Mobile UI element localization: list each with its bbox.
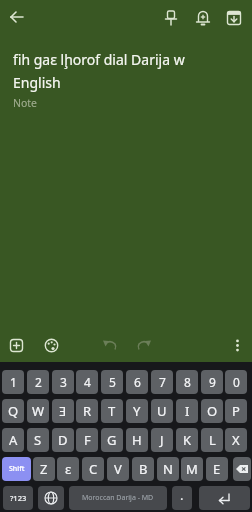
staticText: B <box>139 460 148 478</box>
staticText: I <box>185 402 190 420</box>
staticText: N <box>163 460 173 478</box>
button[interactable]: O <box>201 399 223 423</box>
button[interactable]: A <box>2 428 24 452</box>
staticText: . <box>180 486 184 504</box>
staticText: Z <box>40 460 48 478</box>
staticText: T <box>108 402 116 420</box>
button[interactable]: Moroccan Darija - MD <box>69 486 167 510</box>
button[interactable]: ɛ <box>57 457 79 481</box>
button[interactable]: R <box>76 399 98 423</box>
staticText: Shift <box>9 464 25 474</box>
staticText: F <box>84 431 91 449</box>
button[interactable]: W <box>27 399 49 423</box>
button[interactable]: B <box>132 457 154 481</box>
staticText: Ǝ <box>59 402 67 420</box>
button[interactable]: Q <box>2 399 24 423</box>
button[interactable]: N <box>157 457 179 481</box>
button[interactable]: F <box>76 428 98 452</box>
button[interactable]: 9 <box>201 370 223 394</box>
button[interactable]: Y <box>126 399 148 423</box>
staticText: 1 <box>10 374 17 390</box>
staticText: J <box>160 431 164 449</box>
button[interactable]: Z <box>33 457 55 481</box>
staticText: 0 <box>233 374 240 390</box>
staticText: 7 <box>159 374 166 390</box>
button[interactable] <box>40 334 63 357</box>
button[interactable]: D <box>52 428 74 452</box>
button[interactable]: 4 <box>76 370 98 394</box>
staticText: D <box>58 431 68 449</box>
button[interactable]: 5 <box>101 370 123 394</box>
button[interactable] <box>159 6 183 30</box>
button[interactable]: 2 <box>27 370 49 394</box>
button[interactable]: V <box>107 457 129 481</box>
button[interactable] <box>191 6 215 30</box>
staticText: C <box>89 460 98 478</box>
staticText: U <box>157 402 167 420</box>
staticText: E <box>213 460 221 478</box>
staticText: ɛ <box>65 460 72 478</box>
staticText: H <box>132 431 142 449</box>
staticText: P <box>232 402 240 420</box>
button[interactable]: X <box>225 428 247 452</box>
staticText: Q <box>8 402 19 420</box>
button[interactable]: 0 <box>225 370 247 394</box>
staticText: 6 <box>134 374 141 390</box>
button[interactable]: I <box>176 399 198 423</box>
button[interactable]: S <box>27 428 49 452</box>
staticText: 5 <box>109 374 116 390</box>
button[interactable] <box>38 486 64 510</box>
staticText: X <box>232 431 240 449</box>
button[interactable]: M <box>181 457 203 481</box>
button[interactable]: C <box>82 457 104 481</box>
button[interactable]: U <box>151 399 173 423</box>
staticText: A <box>9 431 18 449</box>
button[interactable]: G <box>101 428 123 452</box>
button[interactable]: L <box>201 428 223 452</box>
button[interactable]: T <box>101 399 123 423</box>
staticText: K <box>183 431 192 449</box>
button[interactable]: ?123 <box>3 486 33 510</box>
button[interactable]: Ǝ <box>52 399 74 423</box>
button[interactable]: . <box>172 486 192 510</box>
staticText: 8 <box>184 374 191 390</box>
button[interactable]: 8 <box>176 370 198 394</box>
staticText: O <box>207 402 218 420</box>
staticText: V <box>114 460 122 478</box>
button[interactable] <box>199 486 250 510</box>
staticText: ?123 <box>10 493 27 503</box>
button[interactable] <box>233 457 251 481</box>
staticText: 9 <box>209 374 216 390</box>
staticText: S <box>34 431 42 449</box>
staticText: Note <box>13 96 38 110</box>
button[interactable] <box>5 334 28 357</box>
button[interactable] <box>132 334 155 357</box>
button[interactable]: 6 <box>126 370 148 394</box>
button[interactable]: K <box>176 428 198 452</box>
button[interactable]: 3 <box>52 370 74 394</box>
staticText: W <box>32 402 45 420</box>
button[interactable]: 7 <box>151 370 173 394</box>
staticText: fih gaɛ lḩorof dial Darija w English <box>13 50 185 92</box>
staticText: Y <box>133 402 141 420</box>
button[interactable]: Shift <box>2 457 31 481</box>
staticText: R <box>83 402 92 420</box>
staticText: 2 <box>35 374 42 390</box>
button[interactable] <box>5 5 29 29</box>
staticText: 3 <box>60 374 67 390</box>
button[interactable]: 1 <box>2 370 24 394</box>
button[interactable]: E <box>206 457 228 481</box>
staticText: M <box>186 460 198 478</box>
button[interactable]: H <box>126 428 148 452</box>
button[interactable]: J <box>151 428 173 452</box>
staticText: G <box>107 431 117 449</box>
button[interactable]: P <box>225 399 247 423</box>
staticText: L <box>209 431 216 449</box>
staticText: Moroccan Darija - MD <box>82 493 154 503</box>
button[interactable] <box>99 334 122 357</box>
button[interactable] <box>226 334 249 357</box>
button[interactable] <box>222 6 246 30</box>
staticText: 4 <box>84 374 91 390</box>
